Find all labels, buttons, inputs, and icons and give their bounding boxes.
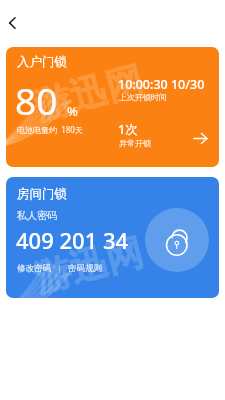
staticText: 入户门锁 <box>17 54 67 70</box>
staticText: 游迅网 <box>29 228 148 302</box>
staticText: 80 <box>15 75 58 125</box>
button[interactable]: Back <box>0 9 26 37</box>
button[interactable]: 房间门锁 <box>6 177 219 298</box>
button[interactable]: More <box>187 125 213 151</box>
staticText: 1次 <box>118 121 138 138</box>
button[interactable]: 入户门锁 <box>6 47 219 167</box>
button[interactable]: 修改密码 <box>17 263 51 274</box>
staticText: % <box>67 102 78 120</box>
staticText: 私人密码 <box>17 209 57 222</box>
staticText: 上次开锁时间 <box>119 92 167 102</box>
staticText: 房间门锁 <box>17 186 67 202</box>
staticText: 409 201 34 <box>16 225 129 255</box>
staticText: | <box>57 263 62 275</box>
staticText: 异常开锁 <box>119 138 151 148</box>
staticText: 游迅网 <box>29 56 148 130</box>
staticText: 电池电量约 180天 <box>17 124 83 135</box>
button[interactable]: 密码规则 <box>68 263 102 274</box>
staticText: 10:00:30 10/30 <box>118 76 205 93</box>
